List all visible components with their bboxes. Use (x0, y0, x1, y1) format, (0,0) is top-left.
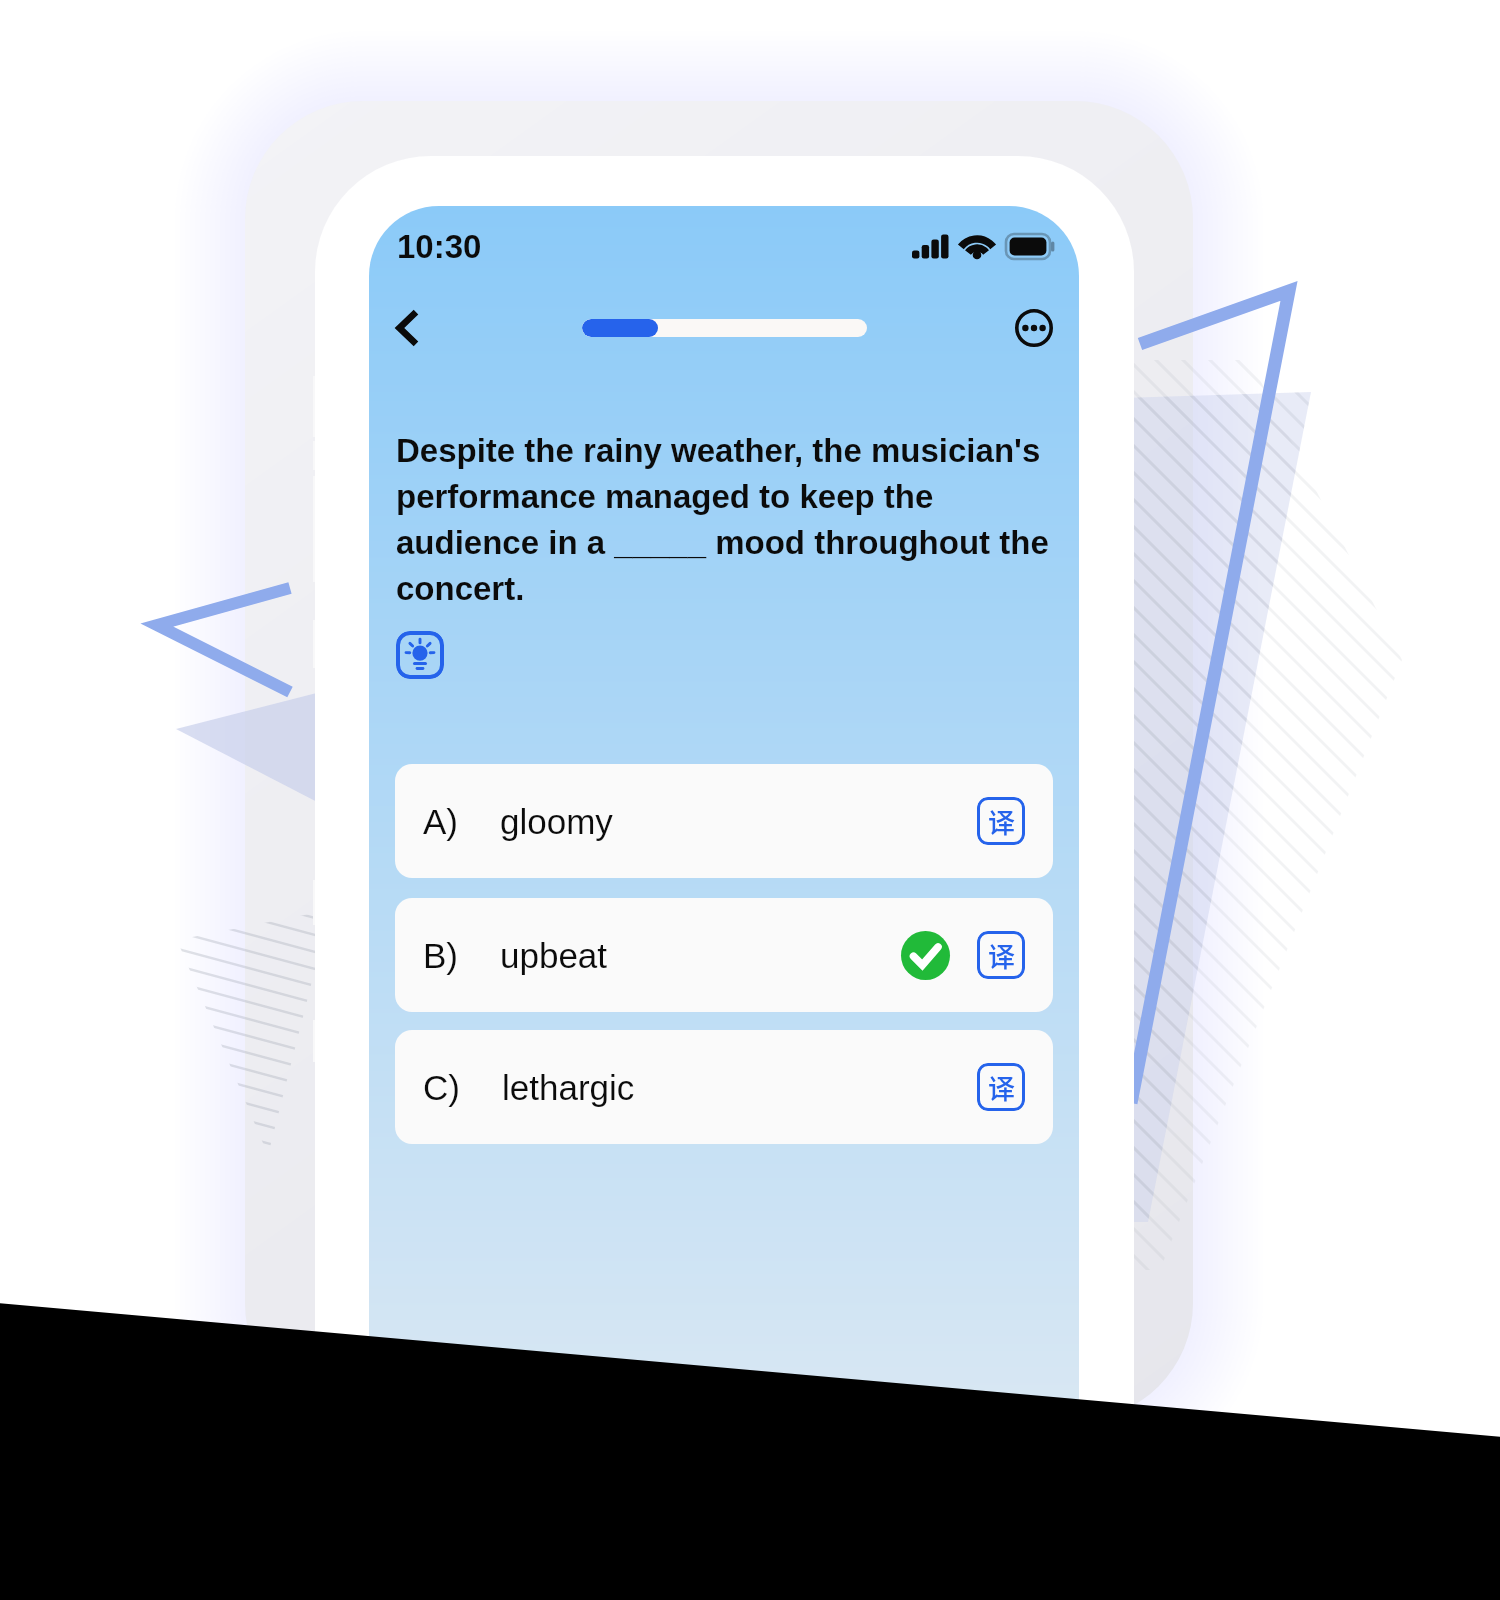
staticText: A) (423, 802, 458, 841)
button[interactable]: Back (378, 300, 434, 356)
staticText: gloomy (500, 802, 613, 841)
button[interactable]: More options (1011, 305, 1057, 351)
staticText: lethargic (502, 1068, 635, 1107)
staticText: 译 (988, 1068, 1015, 1107)
button[interactable]: Translate (977, 797, 1025, 845)
staticText: 译 (988, 802, 1015, 841)
button[interactable]: A) (395, 764, 1053, 878)
button[interactable]: C) (395, 1030, 1053, 1144)
button[interactable]: B) (395, 898, 1053, 1012)
staticText: upbeat (500, 936, 608, 975)
staticText: B) (423, 936, 458, 975)
staticText: C) (423, 1068, 460, 1107)
staticText: 译 (988, 936, 1015, 975)
button[interactable]: Hint (396, 631, 444, 679)
staticText: Despite the rainy weather, the musician'… (396, 432, 1061, 607)
button[interactable]: Translate (977, 931, 1025, 979)
staticText: 10:30 (397, 228, 482, 265)
button[interactable]: Translate (977, 1063, 1025, 1111)
